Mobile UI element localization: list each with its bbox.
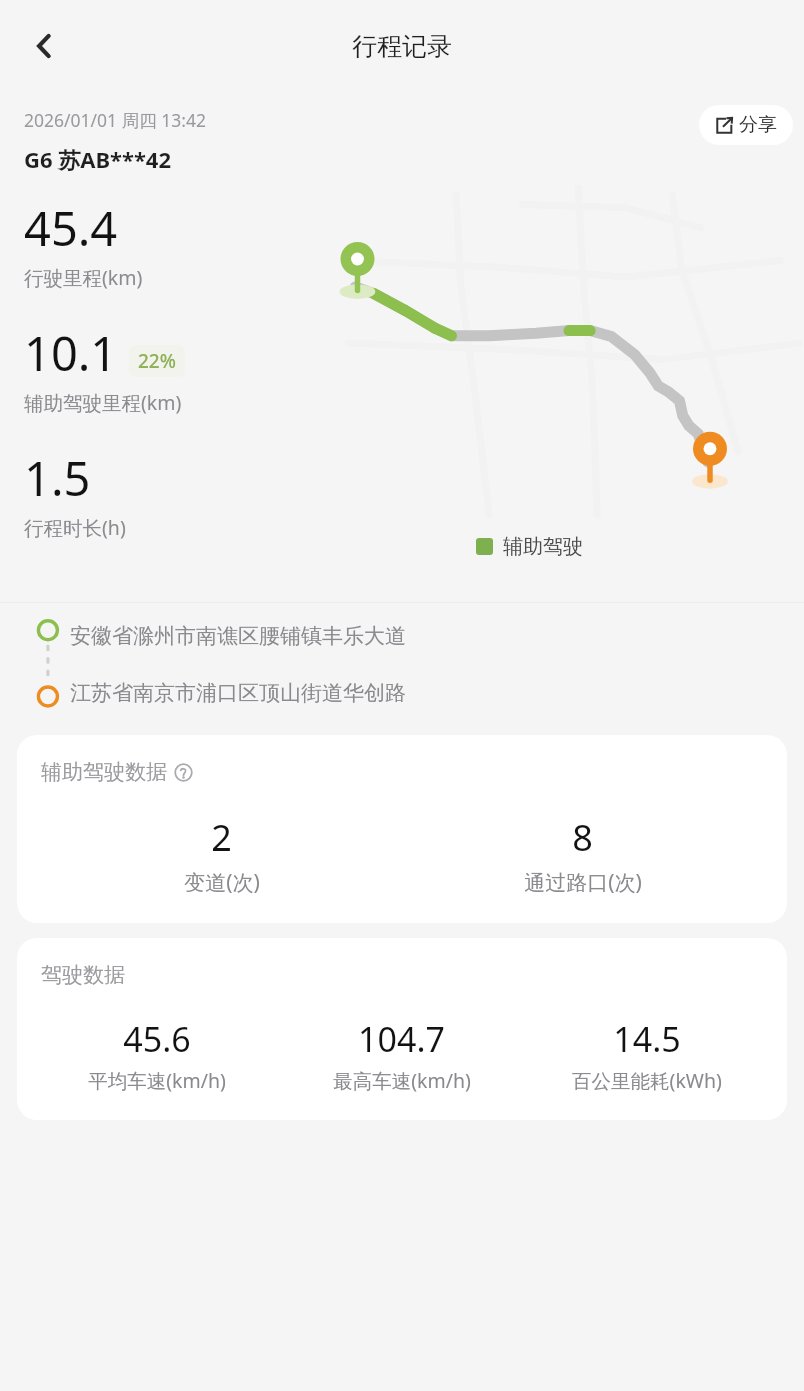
staticText: 8 [572, 813, 593, 862]
staticText: 通过路口(次) [524, 868, 642, 897]
staticText: 45.4 [24, 196, 118, 260]
staticText: 行程时长(h) [24, 514, 126, 541]
staticText: 10.1 [24, 321, 118, 385]
button[interactable]: 驾驶数据 [17, 938, 787, 1120]
staticText: 2026/01/01 周四 13:42 [24, 108, 206, 132]
other: Help [174, 763, 193, 782]
staticText: 江苏省南京市浦口区顶山街道华创路 [70, 680, 406, 706]
button[interactable]: Back [17, 22, 65, 70]
staticText: 行驶里程(km) [24, 264, 143, 291]
staticText: 1.5 [24, 446, 91, 510]
staticText: 2 [211, 813, 232, 862]
staticText: 分享 [739, 113, 777, 137]
staticText: 辅助驾驶里程(km) [24, 389, 182, 416]
staticText: 驾驶数据 [41, 962, 125, 988]
button[interactable]: 辅助驾驶数据 [17, 735, 787, 923]
staticText: 安徽省滁州市南谯区腰铺镇丰乐大道 [70, 623, 406, 649]
staticText: 辅助驾驶 [503, 534, 583, 559]
staticText: 辅助驾驶数据 [41, 759, 167, 785]
staticText: 最高车速(km/h) [333, 1067, 471, 1094]
staticText: G6 苏AB***42 [24, 144, 172, 174]
staticText: 行程记录 [352, 31, 452, 62]
staticText: 变道(次) [184, 868, 260, 897]
staticText: 22% [138, 348, 176, 374]
staticText: 14.5 [613, 1016, 681, 1062]
button[interactable]: 分享 [699, 105, 793, 145]
staticText: 104.7 [358, 1016, 445, 1062]
staticText: 45.6 [123, 1016, 191, 1062]
staticText: 平均车速(km/h) [88, 1067, 226, 1094]
staticText: 百公里能耗(kWh) [572, 1067, 722, 1094]
